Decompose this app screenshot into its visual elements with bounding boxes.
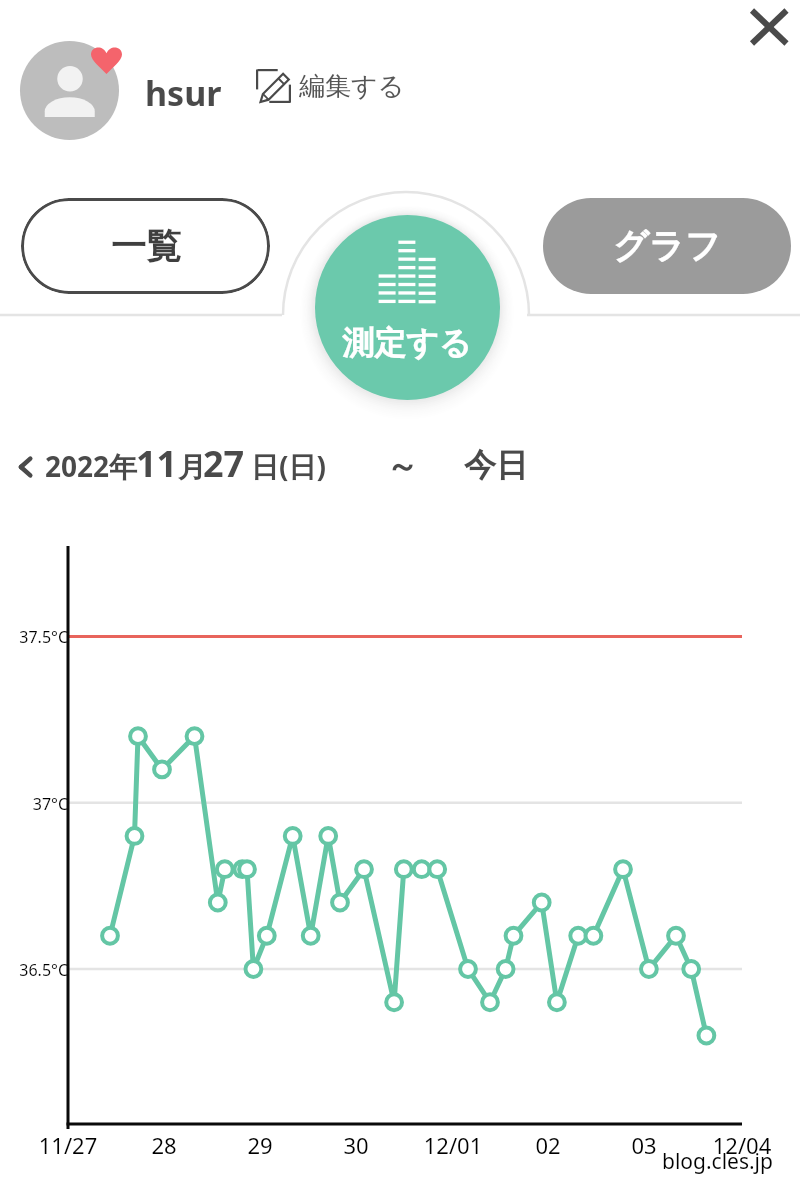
staticText: blog.cles.jp — [662, 1147, 773, 1176]
staticText: 日(日) — [251, 447, 326, 485]
staticText: 02 — [488, 1130, 608, 1160]
staticText: 37°C — [2, 793, 68, 815]
staticText: 27 — [203, 439, 245, 488]
staticText: 2022年 — [45, 447, 138, 485]
button[interactable]: 2022年 — [13, 439, 317, 488]
button[interactable]: 測定する — [315, 215, 500, 400]
staticText: 12/01 — [393, 1130, 513, 1160]
staticText: ～ — [386, 446, 418, 486]
staticText: 一覧 — [111, 224, 181, 268]
staticText: 測定する — [342, 323, 472, 363]
staticText: 37.5°C — [2, 626, 68, 648]
staticText: 11 — [136, 439, 178, 488]
button[interactable]: Close — [735, 0, 800, 54]
button[interactable]: 一覧 — [21, 198, 270, 294]
button[interactable]: グラフ — [543, 198, 791, 294]
staticText: 月 — [178, 450, 206, 485]
button[interactable]: 編集する — [256, 69, 397, 103]
staticText: 28 — [104, 1130, 224, 1160]
staticText: グラフ — [613, 224, 721, 268]
staticText: 11/27 — [8, 1130, 128, 1160]
staticText: 29 — [200, 1130, 320, 1160]
staticText: hsur — [145, 70, 222, 116]
staticText: 03 — [584, 1130, 704, 1160]
staticText: 36.5°C — [2, 959, 68, 981]
staticText: 30 — [296, 1130, 416, 1160]
staticText: 12/04 — [682, 1130, 800, 1160]
staticText: 編集する — [299, 70, 405, 103]
button[interactable]: 今日 — [464, 445, 528, 485]
